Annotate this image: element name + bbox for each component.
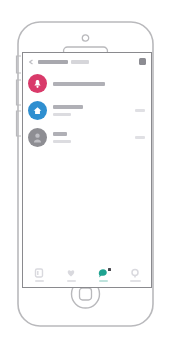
button[interactable]: Chat [87,263,119,287]
other: Back [28,59,34,65]
button[interactable] [23,70,151,97]
button[interactable]: Saved [55,263,87,287]
button[interactable]: Settings [119,263,151,287]
button[interactable] [23,97,151,124]
button[interactable]: Menu [139,58,146,65]
button[interactable]: Back [23,53,151,70]
button[interactable]: Home [23,263,55,287]
button[interactable] [23,124,151,151]
